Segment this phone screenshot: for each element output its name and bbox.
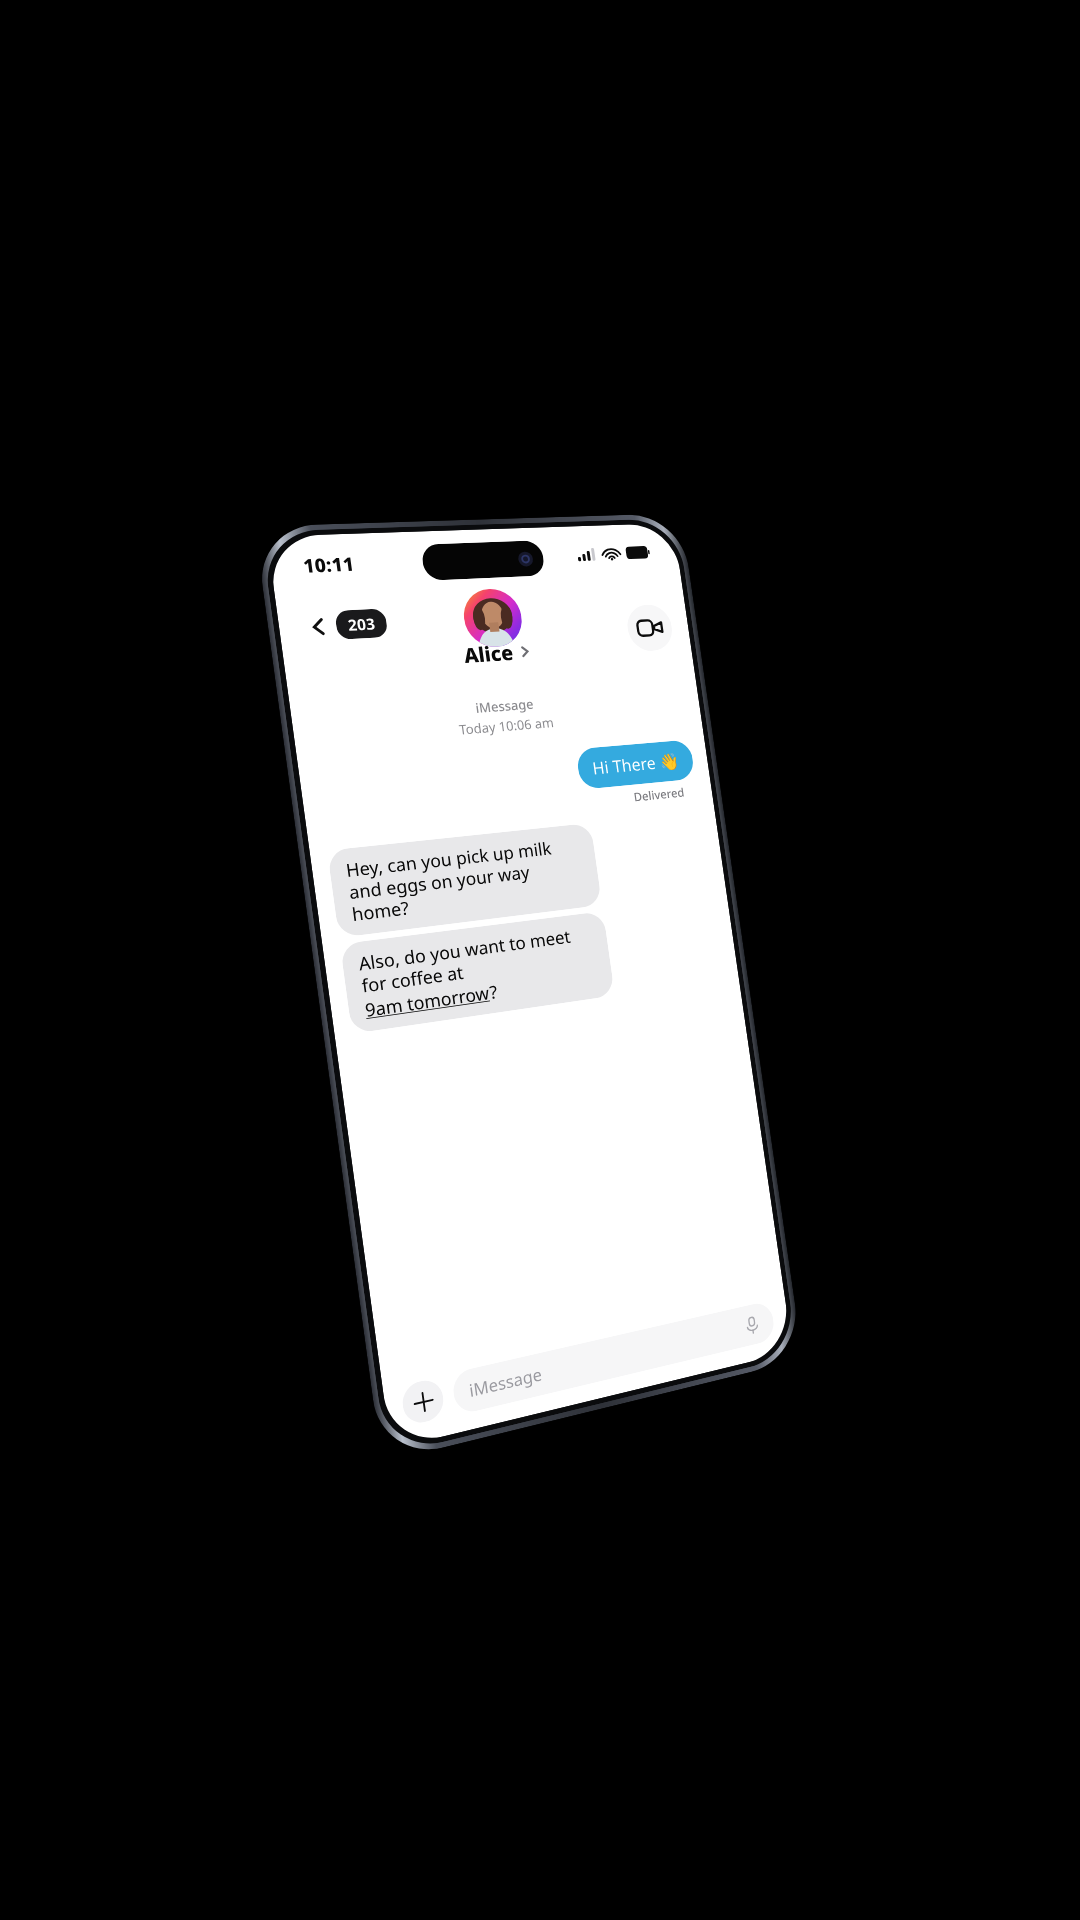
- button[interactable]: iMessage: [451, 1300, 776, 1416]
- staticText: Also, do you want to meet for coffee at: [357, 922, 596, 998]
- button[interactable]: Also, do you want to meet for coffee at: [340, 911, 615, 1034]
- staticText: ?: [488, 979, 499, 1004]
- staticText: 9am tomorrow: [363, 981, 491, 1022]
- staticText: Delivered: [633, 784, 685, 804]
- staticText: 10:11: [302, 551, 356, 579]
- button[interactable]: Hi There 👋: [575, 739, 695, 790]
- staticText: Hi There 👋: [591, 749, 681, 779]
- staticText: Today 10:06 am: [458, 713, 555, 739]
- staticText: 203: [346, 613, 376, 635]
- button[interactable]: FaceTime video call: [624, 604, 675, 652]
- staticText: Hey, can you pick up milk and eggs on yo…: [344, 833, 587, 926]
- staticText: iMessage: [474, 695, 535, 717]
- button[interactable]: Alice profile photo: [460, 588, 525, 649]
- button[interactable]: Hey, can you pick up milk and eggs on yo…: [327, 823, 602, 938]
- button[interactable]: Add attachment: [400, 1377, 446, 1427]
- button[interactable]: Back: [296, 600, 400, 650]
- button[interactable]: Alice: [445, 632, 548, 674]
- staticText: Alice: [462, 639, 515, 668]
- other: Back: [308, 617, 329, 636]
- staticText: iMessage: [468, 1362, 543, 1402]
- other: Dictate: [743, 1315, 761, 1335]
